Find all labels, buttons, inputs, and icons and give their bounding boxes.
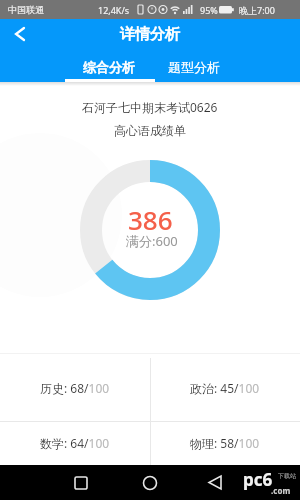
- staticText: 详情分析: [120, 25, 180, 44]
- staticText: pc6: [243, 468, 273, 491]
- button[interactable]: 物理: 58/100: [150, 421, 300, 465]
- staticText: 下载站: [278, 472, 296, 480]
- staticText: 数学: 64/100: [40, 435, 110, 451]
- button[interactable]: 综合分析: [62, 51, 156, 82]
- button[interactable]: [130, 465, 170, 500]
- staticText: 题型分析: [168, 59, 220, 75]
- staticText: 历史: 68/100: [40, 380, 110, 396]
- button[interactable]: 历史: 68/100: [0, 354, 150, 421]
- staticText: 晚上7:00: [239, 4, 275, 16]
- staticText: 石河子七中期末考试0626: [82, 99, 218, 115]
- staticText: 95%: [200, 4, 218, 16]
- staticText: 满分:600: [126, 232, 178, 250]
- button[interactable]: [61, 465, 101, 500]
- staticText: 政治: 45/100: [190, 380, 260, 396]
- button[interactable]: [0, 19, 40, 49]
- staticText: 高心语成绩单: [114, 123, 186, 138]
- staticText: .com: [271, 485, 291, 496]
- staticText: 物理: 58/100: [190, 435, 260, 451]
- button[interactable]: 数学: 64/100: [0, 421, 150, 465]
- staticText: 386: [128, 202, 173, 237]
- button[interactable]: 题型分析: [149, 51, 239, 82]
- staticText: 综合分析: [83, 59, 135, 75]
- button[interactable]: [195, 465, 235, 500]
- staticText: 中国联通: [8, 4, 44, 15]
- staticText: 12,4K/s: [98, 4, 130, 16]
- button[interactable]: 政治: 45/100: [150, 354, 300, 421]
